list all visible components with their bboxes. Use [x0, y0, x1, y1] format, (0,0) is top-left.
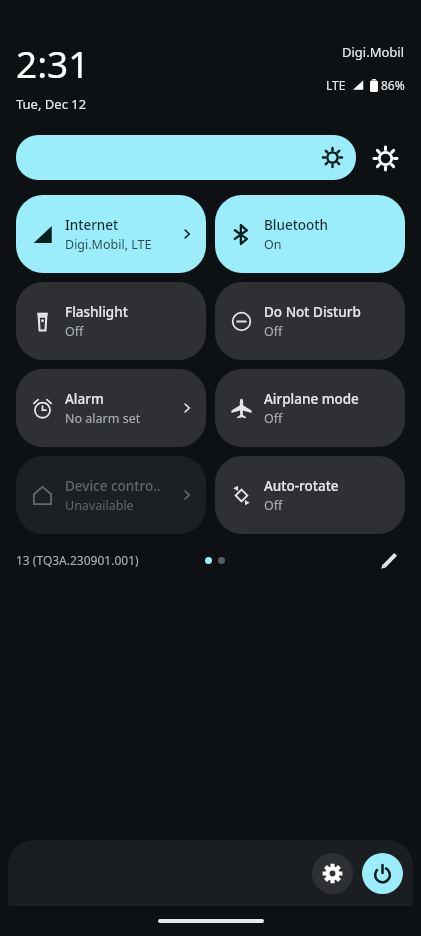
button[interactable]: Flashlight [16, 282, 206, 360]
button[interactable]: Bluetooth [215, 195, 405, 273]
staticText: Tue, Dec 12 [16, 95, 87, 113]
button[interactable]: Do Not Disturb [215, 282, 405, 360]
staticText: Auto-rotate [264, 477, 339, 495]
button[interactable]: Airplane mode [215, 369, 405, 447]
button[interactable]: Alarm [16, 369, 206, 447]
staticText: No alarm set [65, 410, 141, 427]
staticText: Device contro.. [65, 477, 161, 495]
staticText: Alarm [65, 390, 104, 408]
staticText: Airplane mode [264, 390, 359, 408]
staticText: Off [264, 323, 283, 340]
staticText: Flashlight [65, 303, 128, 321]
staticText: Do Not Disturb [264, 303, 361, 321]
button[interactable]: Edit tiles [373, 544, 405, 576]
button[interactable]: Settings [312, 853, 353, 894]
button[interactable]: Device contro.. [16, 456, 206, 534]
staticText: 13 (TQ3A.230901.001) [16, 552, 139, 568]
staticText: 86% [381, 77, 405, 93]
staticText: Off [65, 323, 84, 340]
staticText: LTE [326, 77, 346, 93]
staticText: Off [264, 497, 283, 514]
button[interactable]: Brightness [16, 135, 356, 180]
staticText: Bluetooth [264, 216, 328, 234]
staticText: Unavailable [65, 497, 134, 514]
staticText: 2:31 [16, 38, 90, 88]
staticText: Digi.Mobil [342, 43, 405, 61]
staticText: Internet [65, 216, 119, 234]
button[interactable]: Power [362, 853, 403, 894]
staticText: Digi.Mobil, LTE [65, 236, 152, 253]
staticText: On [264, 236, 282, 253]
button[interactable]: Auto brightness [365, 138, 405, 178]
button[interactable]: Auto-rotate [215, 456, 405, 534]
staticText: Off [264, 410, 283, 427]
button[interactable]: Internet [16, 195, 206, 273]
